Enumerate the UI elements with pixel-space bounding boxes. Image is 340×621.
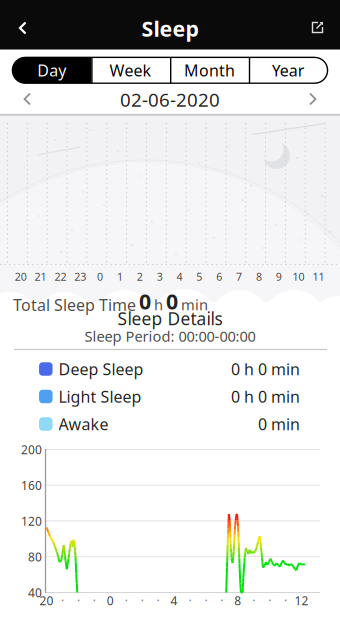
staticText: Sleep Period: 00:00-00:00: [84, 326, 255, 346]
staticText: Sleep: [141, 14, 198, 43]
staticText: ·: [157, 592, 160, 608]
staticText: 20: [39, 592, 53, 608]
staticText: ·: [188, 592, 191, 608]
staticText: 200: [21, 441, 42, 457]
staticText: 80: [28, 549, 42, 565]
staticText: Year: [272, 60, 305, 81]
staticText: 0: [107, 592, 114, 608]
staticText: ·: [252, 592, 255, 608]
staticText: Deep Sleep: [59, 358, 144, 380]
staticText: 120: [21, 513, 42, 529]
button[interactable]: Next day: [293, 88, 333, 110]
staticText: ·: [93, 592, 96, 608]
staticText: 9: [276, 269, 282, 284]
button[interactable]: Back: [0, 0, 44, 49]
staticText: Week: [110, 60, 152, 81]
staticText: Sleep Details: [117, 307, 222, 330]
staticText: 11: [312, 269, 324, 284]
button[interactable]: Year: [249, 57, 328, 83]
staticText: 0: [97, 269, 103, 284]
staticText: ·: [125, 592, 128, 608]
staticText: 160: [21, 477, 42, 493]
staticText: 8: [234, 592, 241, 608]
staticText: 5: [196, 269, 202, 284]
staticText: 02-06-2020: [120, 87, 220, 112]
staticText: 0: [139, 287, 151, 315]
staticText: 0: [166, 287, 178, 315]
staticText: 0 min: [258, 413, 300, 435]
button[interactable]: Previous day: [7, 88, 47, 110]
button[interactable]: Day: [12, 57, 91, 83]
staticText: min: [181, 295, 208, 314]
staticText: ·: [204, 592, 207, 608]
staticText: 23: [74, 269, 86, 284]
staticText: ·: [141, 592, 144, 608]
button[interactable]: Month: [170, 57, 249, 83]
staticText: 21: [34, 269, 46, 284]
staticText: 2: [137, 269, 143, 284]
staticText: h: [154, 295, 163, 314]
staticText: ·: [61, 592, 64, 608]
staticText: 4: [176, 269, 182, 284]
staticText: 3: [157, 269, 163, 284]
staticText: 12: [294, 592, 308, 608]
staticText: ·: [220, 592, 223, 608]
staticText: Total Sleep Time: [13, 294, 136, 315]
button[interactable]: Week: [91, 57, 170, 83]
staticText: Month: [184, 60, 235, 81]
staticText: 4: [170, 592, 177, 608]
staticText: 8: [256, 269, 262, 284]
staticText: 10: [293, 269, 305, 284]
staticText: Awake: [59, 413, 109, 435]
staticText: 20: [15, 269, 27, 284]
staticText: 7: [236, 269, 242, 284]
staticText: Day: [37, 60, 66, 81]
staticText: 22: [54, 269, 66, 284]
staticText: ·: [77, 592, 80, 608]
button[interactable]: Share: [297, 0, 337, 49]
staticText: 6: [216, 269, 222, 284]
staticText: 0 h 0 min: [231, 358, 300, 380]
staticText: 1: [117, 269, 123, 284]
staticText: Light Sleep: [59, 386, 142, 407]
staticText: 40: [28, 584, 42, 600]
staticText: ·: [284, 592, 287, 608]
staticText: ·: [268, 592, 271, 608]
staticText: 0 h 0 min: [231, 386, 300, 407]
